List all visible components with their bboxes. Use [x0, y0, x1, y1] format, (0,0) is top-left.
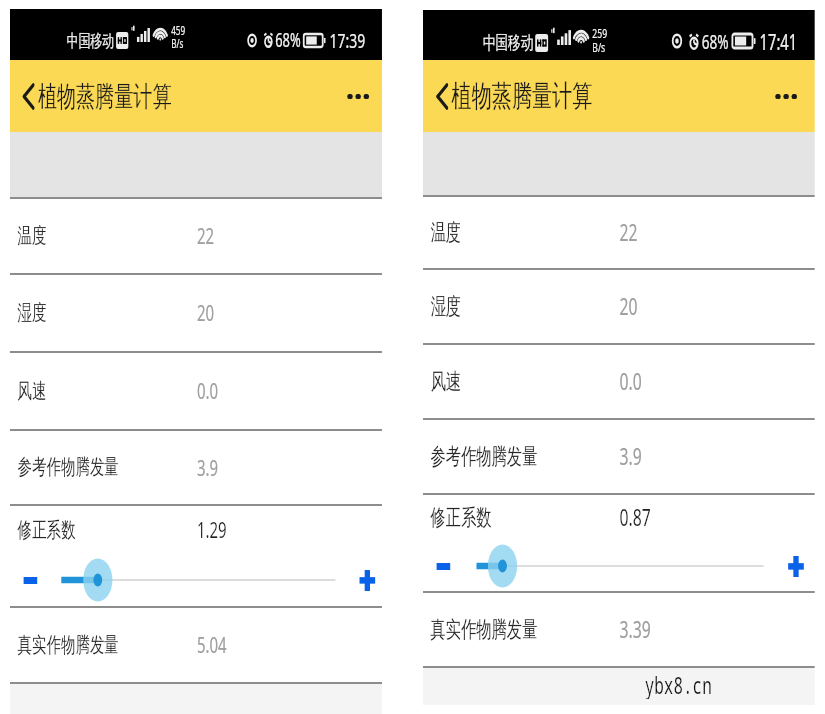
- button[interactable]: Decrease: [16, 564, 44, 596]
- button[interactable]: Increase: [782, 550, 810, 582]
- other: Back: [437, 84, 447, 109]
- staticText: 温度: [430, 218, 461, 246]
- staticText: 湿度: [430, 292, 461, 320]
- staticText: 真实作物腾发量: [17, 631, 119, 658]
- staticText: 0.0: [619, 365, 642, 397]
- staticText: 3.39: [619, 613, 651, 645]
- staticText: 3.9: [197, 452, 219, 482]
- button[interactable]: 参考作物腾发量: [10, 429, 382, 504]
- button[interactable]: 风速: [10, 351, 382, 429]
- staticText: 中国移动: [483, 31, 534, 54]
- button[interactable]: Back: [10, 60, 382, 132]
- staticText: 20: [197, 297, 215, 327]
- staticText: 湿度: [17, 299, 47, 326]
- button[interactable]: 湿度: [10, 273, 382, 351]
- staticText: 459: [171, 22, 185, 38]
- button[interactable]: More options: [775, 94, 815, 99]
- staticText: 17:39: [330, 26, 366, 54]
- button[interactable]: 风速: [423, 343, 815, 418]
- staticText: 5.04: [197, 629, 227, 659]
- staticText: 修正系数: [430, 503, 492, 531]
- staticText: 参考作物腾发量: [430, 442, 538, 470]
- staticText: 17:41: [760, 27, 798, 56]
- button[interactable]: 湿度: [423, 268, 815, 343]
- staticText: ybx8.cn: [645, 669, 712, 699]
- staticText: 0.87: [619, 501, 651, 533]
- staticText: 中国移动: [66, 30, 115, 52]
- staticText: 22: [197, 220, 215, 250]
- staticText: 3.9: [619, 440, 642, 472]
- staticText: 参考作物腾发量: [17, 453, 119, 480]
- staticText: 植物蒸腾量计算: [452, 78, 593, 115]
- button[interactable]: Back: [423, 60, 815, 132]
- other: Back: [23, 84, 34, 109]
- staticText: 68%: [702, 28, 729, 55]
- staticText: 修正系数: [17, 516, 76, 543]
- staticText: 68%: [275, 27, 301, 53]
- button[interactable]: 温度: [423, 195, 815, 268]
- staticText: B/s: [592, 38, 605, 55]
- button[interactable]: 真实作物腾发量: [423, 591, 815, 666]
- staticText: 0.0: [197, 375, 219, 405]
- staticText: 真实作物腾发量: [430, 615, 538, 643]
- button[interactable]: 温度: [10, 197, 382, 273]
- button[interactable]: 真实作物腾发量: [10, 606, 382, 682]
- staticText: 259: [592, 24, 607, 41]
- staticText: 20: [619, 290, 638, 322]
- button[interactable]: Decrease: [429, 550, 457, 582]
- staticText: 风速: [430, 367, 461, 395]
- button[interactable]: More options: [347, 94, 382, 99]
- staticText: 22: [619, 216, 638, 248]
- button[interactable]: Increase: [353, 564, 381, 596]
- staticText: B/s: [171, 35, 184, 51]
- staticText: 风速: [17, 377, 47, 404]
- staticText: 1.29: [197, 514, 227, 544]
- staticText: 温度: [17, 222, 47, 249]
- button[interactable]: 参考作物腾发量: [423, 418, 815, 493]
- staticText: 植物蒸腾量计算: [38, 79, 172, 114]
